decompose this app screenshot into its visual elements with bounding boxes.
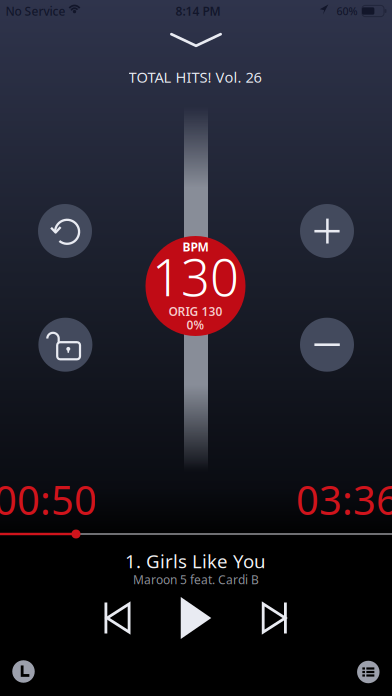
- staticText: 130: [152, 243, 239, 310]
- staticText: 8:14 PM: [175, 3, 220, 19]
- button[interactable]: Next track: [254, 594, 295, 641]
- staticText: ORIG 130: [168, 303, 222, 319]
- button[interactable]: Unlock tempo: [38, 318, 92, 372]
- button[interactable]: History: [1, 649, 45, 693]
- staticText: Maroon 5 feat. Cardi B: [133, 571, 259, 587]
- staticText: TOTAL HITS! Vol. 26: [128, 67, 261, 87]
- button[interactable]: Previous track: [96, 594, 138, 641]
- button[interactable]: Playlist: [346, 650, 390, 694]
- staticText: 1. Girls Like You: [125, 549, 266, 573]
- button[interactable]: Play: [173, 589, 219, 647]
- button[interactable]: Increase tempo: [300, 204, 354, 258]
- staticText: 0%: [186, 317, 204, 333]
- button[interactable]: Tempo 130 BPM: [145, 236, 245, 336]
- button[interactable]: Decrease tempo: [300, 318, 354, 372]
- staticText: BPM: [182, 239, 208, 255]
- staticText: 00:50: [0, 473, 97, 526]
- staticText: 60%: [336, 4, 357, 18]
- button[interactable]: Reset tempo: [38, 204, 92, 258]
- staticText: No Service: [5, 3, 65, 19]
- staticText: 03:36: [296, 473, 392, 526]
- button[interactable]: Collapse player: [160, 23, 232, 57]
